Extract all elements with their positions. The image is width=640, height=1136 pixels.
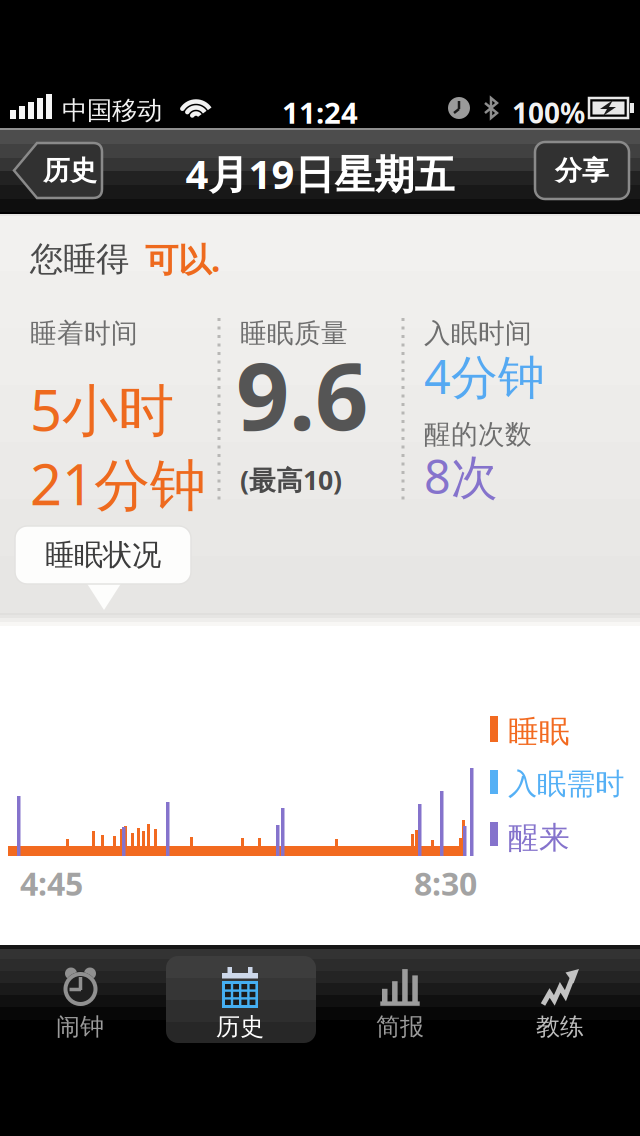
staticText: 中国移动 xyxy=(62,95,162,126)
staticText: 睡着时间 xyxy=(30,317,138,350)
staticText: 您睡得 xyxy=(30,239,129,280)
staticText: 睡眠质量 xyxy=(240,317,348,350)
button[interactable]: 分享 xyxy=(535,142,629,199)
staticText: 醒来 xyxy=(508,819,570,857)
button[interactable]: 简报 xyxy=(320,945,480,1048)
button[interactable]: 教练 xyxy=(480,945,640,1048)
staticText: 9.6 xyxy=(236,332,368,456)
staticText: 简报 xyxy=(376,1012,424,1041)
button[interactable]: 睡眠状况 xyxy=(15,526,191,612)
staticText: 4分钟 xyxy=(424,345,545,407)
staticText: 5小时 xyxy=(30,372,174,446)
staticText: (最高10) xyxy=(240,462,342,497)
staticText: 入眠时间 xyxy=(424,317,532,350)
staticText: 历史 xyxy=(216,1012,264,1041)
staticText: 8次 xyxy=(424,445,498,507)
staticText: 历史 xyxy=(43,154,97,187)
staticText: 100% xyxy=(512,94,585,131)
staticText: 4月19日星期五 xyxy=(185,147,454,200)
staticText: 教练 xyxy=(536,1012,584,1041)
staticText: 睡眠状况 xyxy=(45,537,161,573)
button[interactable]: 闹钟 xyxy=(0,945,160,1048)
button[interactable]: 历史 xyxy=(13,142,103,199)
staticText: 8:30 xyxy=(414,862,477,904)
staticText: 可以. xyxy=(145,237,220,281)
staticText: 21分钟 xyxy=(30,446,206,521)
staticText: 醒的次数 xyxy=(424,418,532,451)
staticText: 入眠需时 xyxy=(508,766,624,802)
staticText: 4:45 xyxy=(20,862,83,904)
staticText: 分享 xyxy=(555,154,609,187)
staticText: 11:24 xyxy=(282,93,358,132)
staticText: 闹钟 xyxy=(56,1012,104,1041)
staticText: 睡眠 xyxy=(508,713,570,751)
button[interactable]: 历史 xyxy=(160,945,320,1048)
